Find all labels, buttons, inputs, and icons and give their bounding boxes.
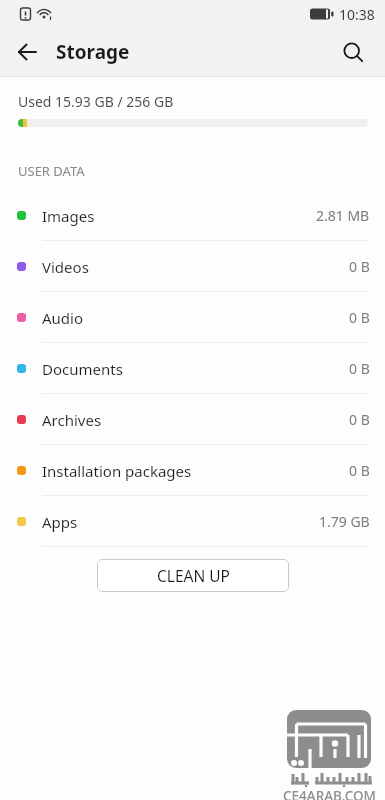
staticText: 2.81 MB: [316, 206, 370, 225]
button[interactable]: Installation packages: [0, 445, 385, 496]
staticText: Audio: [42, 308, 84, 328]
staticText: 0 B: [349, 410, 370, 429]
button[interactable]: Videos: [0, 241, 385, 292]
button[interactable]: Archives: [0, 394, 385, 445]
button[interactable]: Apps: [0, 496, 385, 547]
staticText: 1.79 GB: [319, 512, 370, 531]
staticText: Installation packages: [42, 461, 192, 481]
button[interactable]: Audio: [0, 292, 385, 343]
staticText: Used 15.93 GB / 256 GB: [18, 92, 174, 111]
staticText: Videos: [42, 257, 89, 277]
staticText: Images: [42, 206, 95, 226]
staticText: Storage: [56, 39, 130, 65]
button[interactable]: [329, 28, 377, 76]
staticText: 10:38: [339, 5, 375, 24]
staticText: 0 B: [349, 257, 370, 276]
button[interactable]: Images: [0, 190, 385, 241]
staticText: CE4ARAB.COM: [283, 787, 377, 800]
button[interactable]: [0, 28, 48, 76]
staticText: Archives: [42, 410, 102, 430]
staticText: 0 B: [349, 461, 370, 480]
staticText: 0 B: [349, 308, 370, 327]
button[interactable]: Documents: [0, 343, 385, 394]
staticText: CLEAN UP: [157, 565, 230, 586]
staticText: Documents: [42, 359, 123, 379]
staticText: USER DATA: [18, 162, 85, 180]
staticText: 0 B: [349, 359, 370, 378]
button[interactable]: CLEAN UP: [97, 559, 289, 592]
staticText: Apps: [42, 512, 78, 532]
